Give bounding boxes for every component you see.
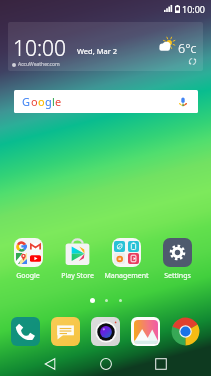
button[interactable]: Home	[91, 352, 121, 376]
staticText: 10:00	[182, 3, 206, 15]
staticText: Management	[104, 271, 149, 281]
button[interactable]: Management	[102, 238, 150, 281]
button[interactable]: 10:00	[8, 22, 203, 71]
button[interactable]: Chrome	[171, 317, 200, 346]
button[interactable]: Back	[35, 352, 65, 376]
button[interactable]: Phone	[11, 317, 40, 346]
staticText: l	[52, 94, 55, 109]
staticText: Wed, Mar 2	[77, 46, 117, 56]
button[interactable]: Refresh	[187, 56, 198, 67]
button[interactable]: Play Store	[53, 238, 101, 281]
staticText: Play Store	[61, 271, 94, 281]
staticText: g	[45, 94, 52, 109]
staticText: AccuWeather.com	[18, 61, 60, 68]
staticText: G	[22, 94, 31, 109]
staticText: Settings	[164, 271, 191, 281]
staticText: Google	[16, 271, 40, 281]
staticText: o	[31, 94, 38, 109]
staticText: o	[38, 94, 45, 109]
staticText: 6°c	[178, 40, 197, 57]
staticText: e	[55, 94, 62, 109]
button[interactable]: Gallery	[131, 317, 160, 346]
button[interactable]: Recents	[146, 352, 176, 376]
staticText: 10:00	[13, 34, 67, 63]
button[interactable]: Messages	[51, 317, 80, 346]
button[interactable]: Settings	[153, 238, 201, 281]
button[interactable]: G	[14, 90, 198, 113]
button[interactable]: Google	[4, 238, 52, 281]
button[interactable]: Camera	[91, 317, 120, 346]
